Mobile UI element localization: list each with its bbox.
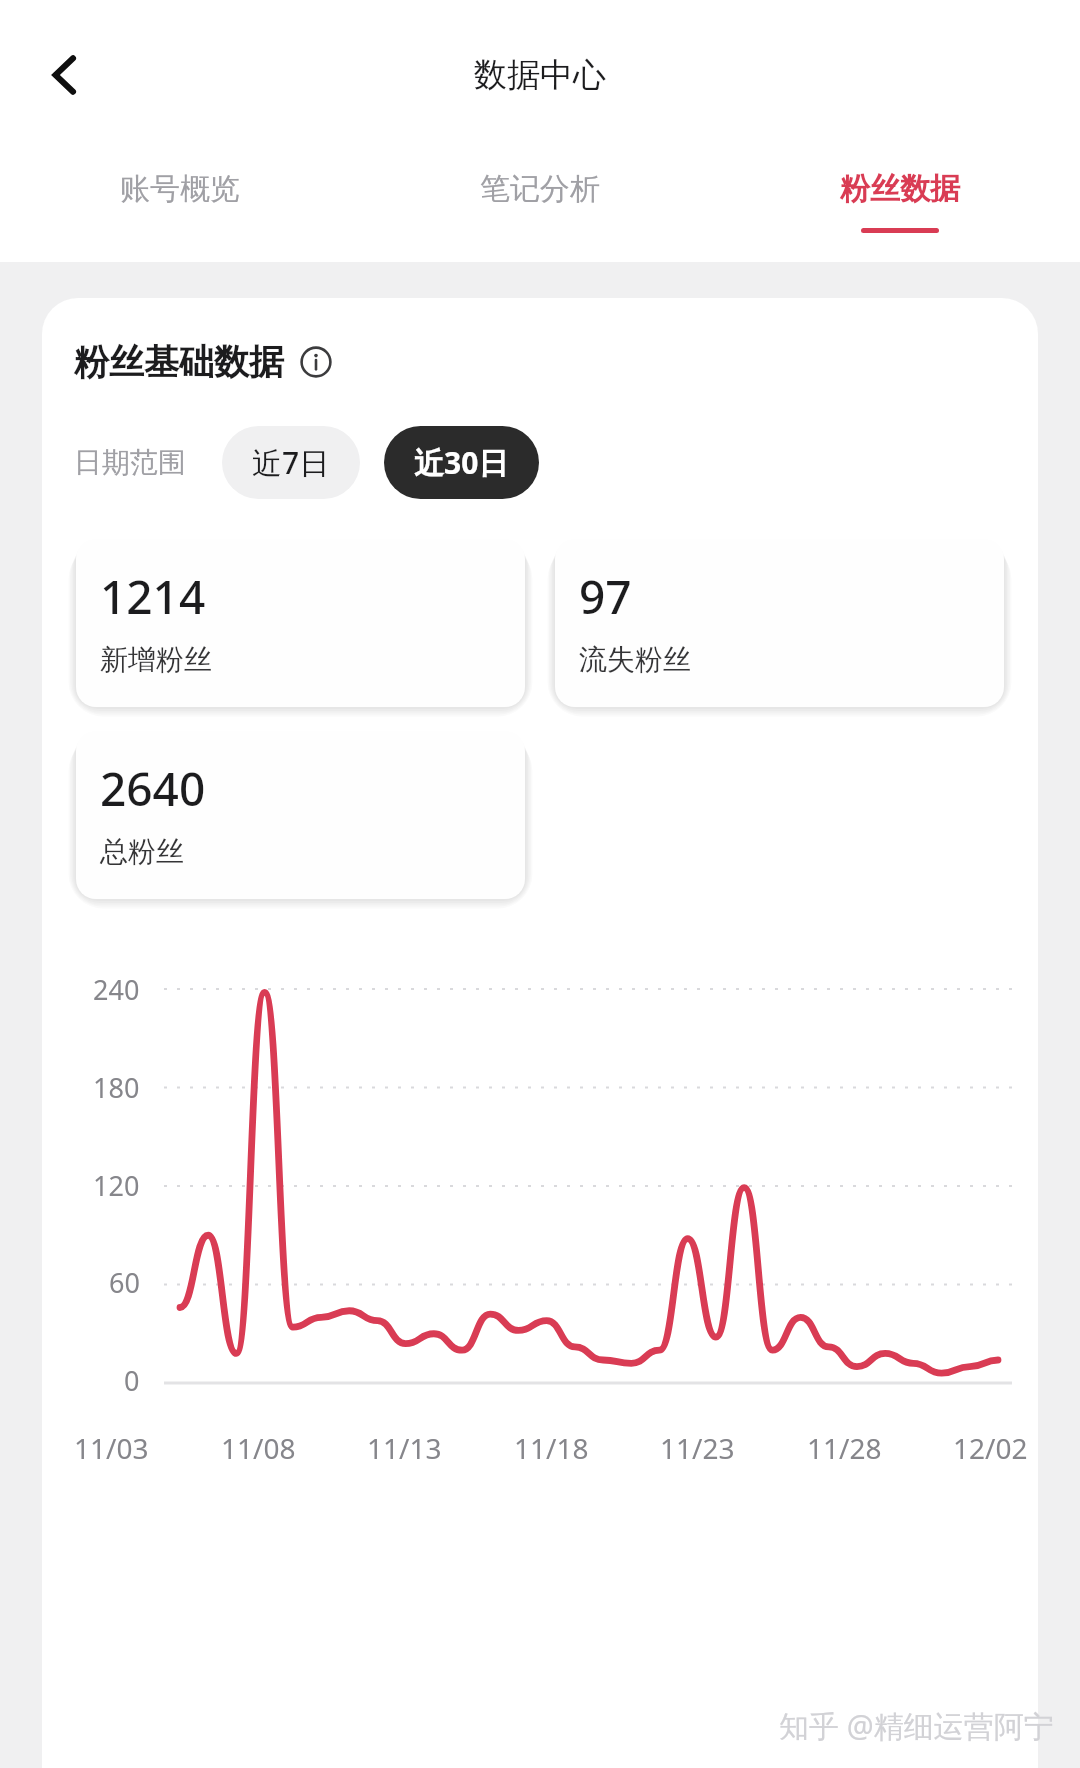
button[interactable]: 97 [555, 539, 1004, 707]
staticText: 日期范围 [74, 445, 186, 480]
staticText: 11/13 [367, 1429, 442, 1467]
staticText: 240 [93, 971, 140, 1008]
staticText: 11/23 [660, 1429, 735, 1467]
staticText: 0 [124, 1362, 140, 1399]
button[interactable]: 近7日 [222, 426, 360, 499]
staticText: 数据中心 [474, 54, 606, 96]
staticText: 总粉丝 [100, 834, 184, 869]
staticText: 新增粉丝 [100, 642, 212, 677]
button[interactable]: 粉丝数据 [720, 150, 1080, 262]
staticText: 97 [579, 565, 632, 628]
button[interactable]: 笔记分析 [360, 150, 720, 262]
button[interactable]: Info [298, 344, 334, 380]
staticText: 11/28 [807, 1429, 882, 1467]
staticText: 180 [93, 1069, 140, 1106]
staticText: 笔记分析 [480, 170, 600, 208]
staticText: 流失粉丝 [579, 642, 691, 677]
staticText: 11/08 [221, 1429, 296, 1467]
button[interactable]: 2640 [76, 731, 525, 899]
staticText: 近7日 [252, 442, 330, 483]
staticText: 12/02 [953, 1429, 1028, 1467]
staticText: 120 [93, 1167, 140, 1204]
staticText: 11/03 [74, 1429, 149, 1467]
button[interactable]: 近30日 [384, 426, 539, 499]
staticText: 粉丝数据 [840, 170, 960, 208]
staticText: 1214 [100, 565, 206, 628]
staticText: 60 [109, 1264, 140, 1301]
staticText: 粉丝基础数据 [74, 340, 284, 384]
button[interactable]: 账号概览 [0, 150, 360, 262]
staticText: 11/18 [514, 1429, 589, 1467]
button[interactable]: 1214 [76, 539, 525, 707]
staticText: 近30日 [414, 442, 509, 483]
staticText: 2640 [100, 757, 206, 820]
button[interactable]: Back [30, 39, 102, 111]
staticText: 知乎 @精细运营阿宁 [779, 1705, 1054, 1746]
staticText: 账号概览 [120, 170, 240, 208]
